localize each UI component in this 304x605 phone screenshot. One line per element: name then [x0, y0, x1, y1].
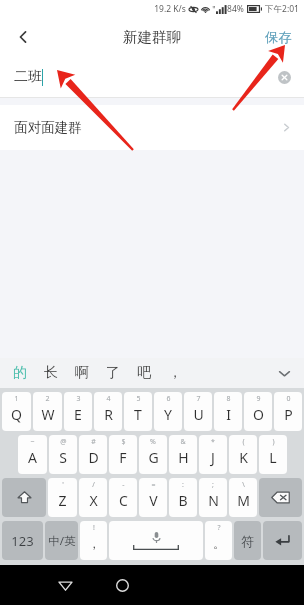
button[interactable]: 123	[2, 521, 43, 560]
staticText: J	[211, 448, 215, 467]
staticText: T	[134, 405, 142, 424]
button[interactable]: '	[48, 478, 77, 517]
staticText: 0	[286, 394, 291, 404]
button[interactable]: /	[79, 478, 107, 517]
staticText: (	[242, 437, 245, 447]
button[interactable]: ~	[18, 435, 47, 474]
staticText: 的	[13, 364, 27, 382]
staticText: !	[93, 523, 95, 533]
button[interactable]: 符	[234, 521, 261, 560]
button[interactable]: Collapse candidates	[272, 361, 296, 385]
button[interactable]: 的	[10, 364, 30, 382]
button[interactable]: Back	[51, 571, 79, 599]
staticText: 长	[44, 364, 58, 382]
staticText: A	[28, 448, 37, 467]
staticText: 下午2:01	[265, 3, 299, 15]
staticText: 7	[196, 394, 201, 404]
button[interactable]: 3	[64, 392, 92, 431]
staticText: 8	[226, 394, 231, 404]
button[interactable]: Back	[0, 18, 46, 56]
staticText: 新建群聊	[123, 28, 181, 46]
staticText: D	[88, 448, 99, 467]
staticText: B	[178, 491, 188, 510]
button[interactable]: 9	[244, 392, 272, 431]
button[interactable]: Shift	[2, 478, 46, 517]
button[interactable]: 保存	[253, 18, 304, 56]
button[interactable]: 5	[124, 392, 152, 431]
staticText: \	[242, 480, 245, 490]
staticText: X	[89, 491, 98, 510]
button[interactable]: =	[139, 478, 167, 517]
staticText: 9	[256, 394, 261, 404]
button[interactable]: 长	[41, 364, 61, 382]
staticText: S	[59, 448, 67, 467]
staticText: 中/英	[48, 533, 76, 549]
staticText: C	[119, 491, 128, 510]
button[interactable]: (	[229, 435, 257, 474]
staticText: 了	[106, 364, 120, 382]
button[interactable]: 吧	[134, 364, 154, 382]
staticText: N	[208, 491, 219, 510]
staticText: Y	[164, 405, 172, 424]
staticText: 19.2 K/s	[154, 3, 186, 15]
button[interactable]: 6	[154, 392, 182, 431]
staticText: 吧	[137, 364, 151, 382]
button[interactable]: ，	[165, 364, 185, 382]
staticText: 保存	[265, 29, 292, 46]
staticText: -	[122, 480, 125, 490]
staticText: R	[104, 405, 113, 424]
button[interactable]: $	[109, 435, 137, 474]
staticText: 面对面建群	[14, 119, 82, 136]
staticText: 。	[213, 536, 225, 551]
button[interactable]: 0	[274, 392, 302, 431]
button[interactable]: @	[49, 435, 77, 474]
staticText: G	[148, 448, 159, 467]
staticText: U	[193, 405, 204, 424]
staticText: '	[62, 480, 64, 490]
staticText: E	[74, 405, 82, 424]
staticText: 2	[45, 394, 50, 404]
staticText: W	[41, 405, 55, 424]
staticText: 5	[136, 394, 141, 404]
staticText: I	[226, 405, 231, 424]
button[interactable]: %	[139, 435, 167, 474]
staticText: "	[212, 4, 216, 15]
button[interactable]: 8	[214, 392, 242, 431]
staticText: 84%	[227, 3, 244, 15]
button[interactable]: 7	[184, 392, 212, 431]
button[interactable]: 1	[2, 392, 31, 431]
button[interactable]: -	[109, 478, 137, 517]
staticText: Z	[58, 491, 67, 510]
staticText: )	[272, 437, 275, 447]
button[interactable]: \	[229, 478, 257, 517]
button[interactable]: Home	[108, 571, 136, 599]
button[interactable]: !	[80, 521, 107, 560]
staticText: *	[211, 437, 215, 447]
button[interactable]: Clear text	[272, 65, 296, 89]
button[interactable]: 2	[33, 392, 62, 431]
button[interactable]: Space	[109, 521, 203, 560]
staticText: 6	[166, 394, 171, 404]
button[interactable]: #	[79, 435, 107, 474]
button[interactable]: *	[199, 435, 227, 474]
button[interactable]: Enter	[263, 521, 302, 560]
button[interactable]: 啊	[72, 364, 92, 382]
button[interactable]: 面对面建群	[0, 105, 304, 150]
staticText: 123	[11, 532, 34, 550]
staticText: H	[178, 448, 189, 467]
staticText: P	[284, 405, 293, 424]
staticText: 1	[14, 394, 19, 404]
button[interactable]: 中/英	[45, 521, 78, 560]
staticText: Q	[11, 405, 22, 424]
button[interactable]: 了	[103, 364, 123, 382]
button[interactable]: :	[169, 478, 197, 517]
staticText: ，	[168, 364, 182, 382]
button[interactable]: &	[169, 435, 197, 474]
staticText: &	[180, 437, 186, 447]
button[interactable]: ;	[199, 478, 227, 517]
button[interactable]: Backspace	[259, 478, 302, 517]
button[interactable]: )	[259, 435, 287, 474]
button[interactable]: 4	[94, 392, 122, 431]
button[interactable]: ?	[205, 521, 232, 560]
staticText: V	[149, 491, 158, 510]
